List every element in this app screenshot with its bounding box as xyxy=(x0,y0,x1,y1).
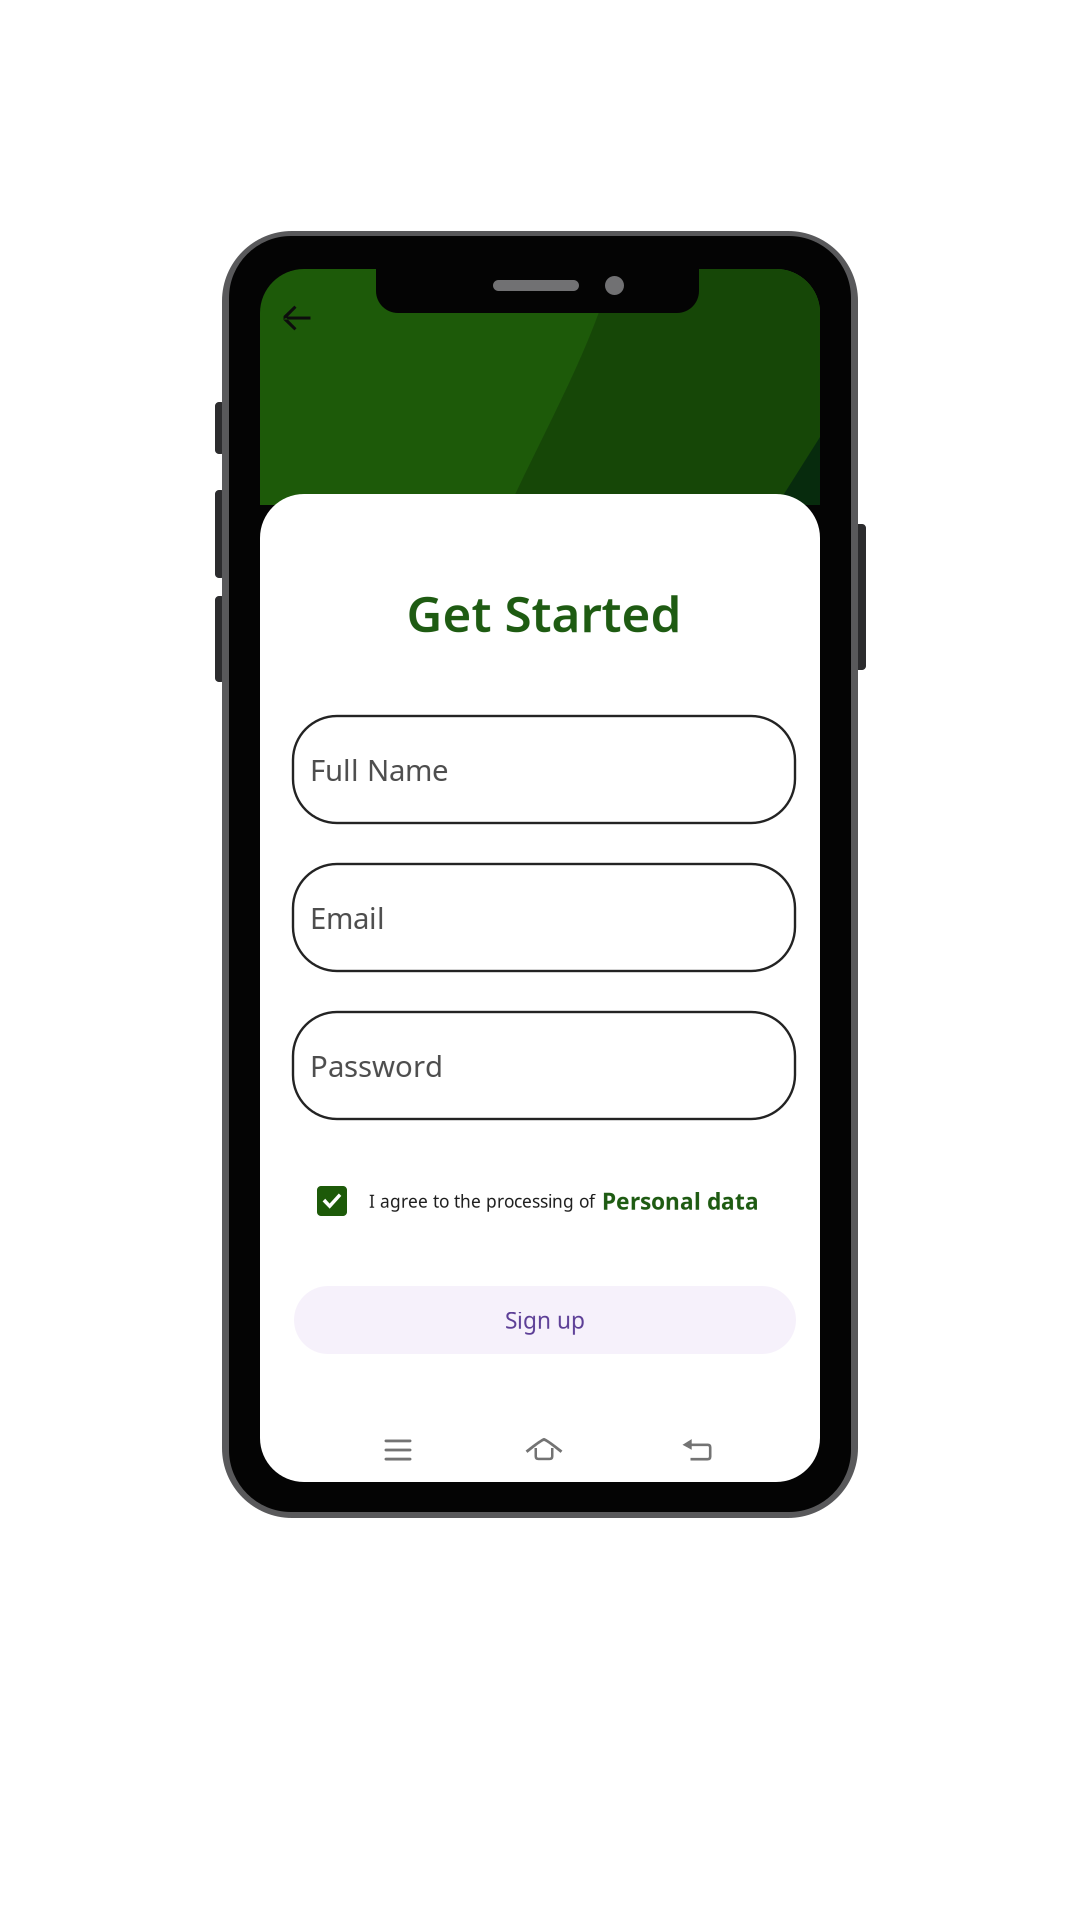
staticText: I agree to the processing of xyxy=(369,1189,595,1212)
button[interactable]: Recents xyxy=(323,1422,473,1478)
button[interactable]: I agree to the processing of xyxy=(317,1182,772,1220)
staticText: Personal data xyxy=(602,1186,759,1216)
button[interactable]: Home xyxy=(473,1422,623,1478)
button[interactable]: Full Name xyxy=(293,716,795,823)
button[interactable]: Back xyxy=(623,1422,773,1478)
staticText: Password xyxy=(310,1046,443,1085)
button[interactable]: Sign up xyxy=(294,1286,796,1354)
staticText: Email xyxy=(310,898,385,937)
staticText: Sign up xyxy=(505,1305,585,1335)
button[interactable]: Back xyxy=(265,287,329,349)
button[interactable]: Password xyxy=(293,1012,795,1119)
button[interactable]: Email xyxy=(293,864,795,971)
staticText: Get Started xyxy=(406,580,681,646)
staticText: Full Name xyxy=(310,750,449,789)
